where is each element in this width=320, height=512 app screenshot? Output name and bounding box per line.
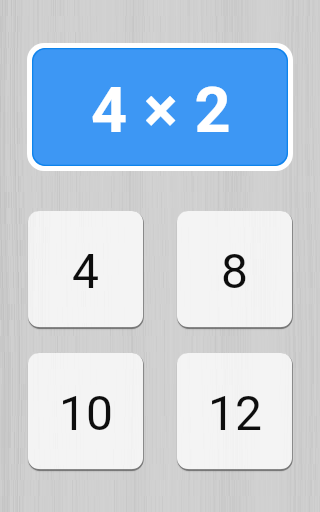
staticText: 8 bbox=[221, 243, 248, 299]
staticText: 4 bbox=[72, 243, 99, 299]
button[interactable]: 8 bbox=[177, 211, 292, 327]
button[interactable]: 12 bbox=[177, 353, 292, 469]
staticText: 4 × 2 bbox=[91, 74, 232, 148]
button[interactable]: 10 bbox=[28, 353, 143, 469]
button[interactable]: 4 bbox=[28, 211, 143, 327]
staticText: 12 bbox=[208, 385, 262, 441]
staticText: 10 bbox=[59, 385, 113, 441]
button[interactable]: 4 × 2 bbox=[32, 48, 288, 166]
